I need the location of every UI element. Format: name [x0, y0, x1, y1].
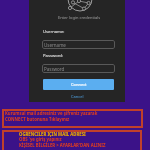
button[interactable]: Cancel: [29, 92, 125, 100]
staticText: KİŞİSEL BİLGİLER > AYARLAR'DAN ALINIZ: [19, 142, 106, 148]
button[interactable]: Username: [42, 40, 115, 49]
button[interactable]: Connect: [43, 79, 114, 90]
staticText: Connect: [71, 82, 87, 87]
staticText: Username: [44, 42, 66, 48]
staticText: Kurumsal mail adresiniz ve şifreniz yaza…: [5, 110, 98, 122]
staticText: Username:: [43, 29, 65, 35]
staticText: Password: [44, 66, 65, 72]
button[interactable]: Password: [42, 64, 115, 73]
staticText: Password:: [43, 53, 64, 59]
staticText: Cancel: [71, 94, 84, 99]
staticText: Enter login credentials: [31, 15, 127, 20]
staticText: OBS 'ye giriş yapınız: [19, 136, 62, 142]
staticText: ÖĞRENCİLER İÇİN MAİL ADRESİ: [19, 131, 86, 137]
